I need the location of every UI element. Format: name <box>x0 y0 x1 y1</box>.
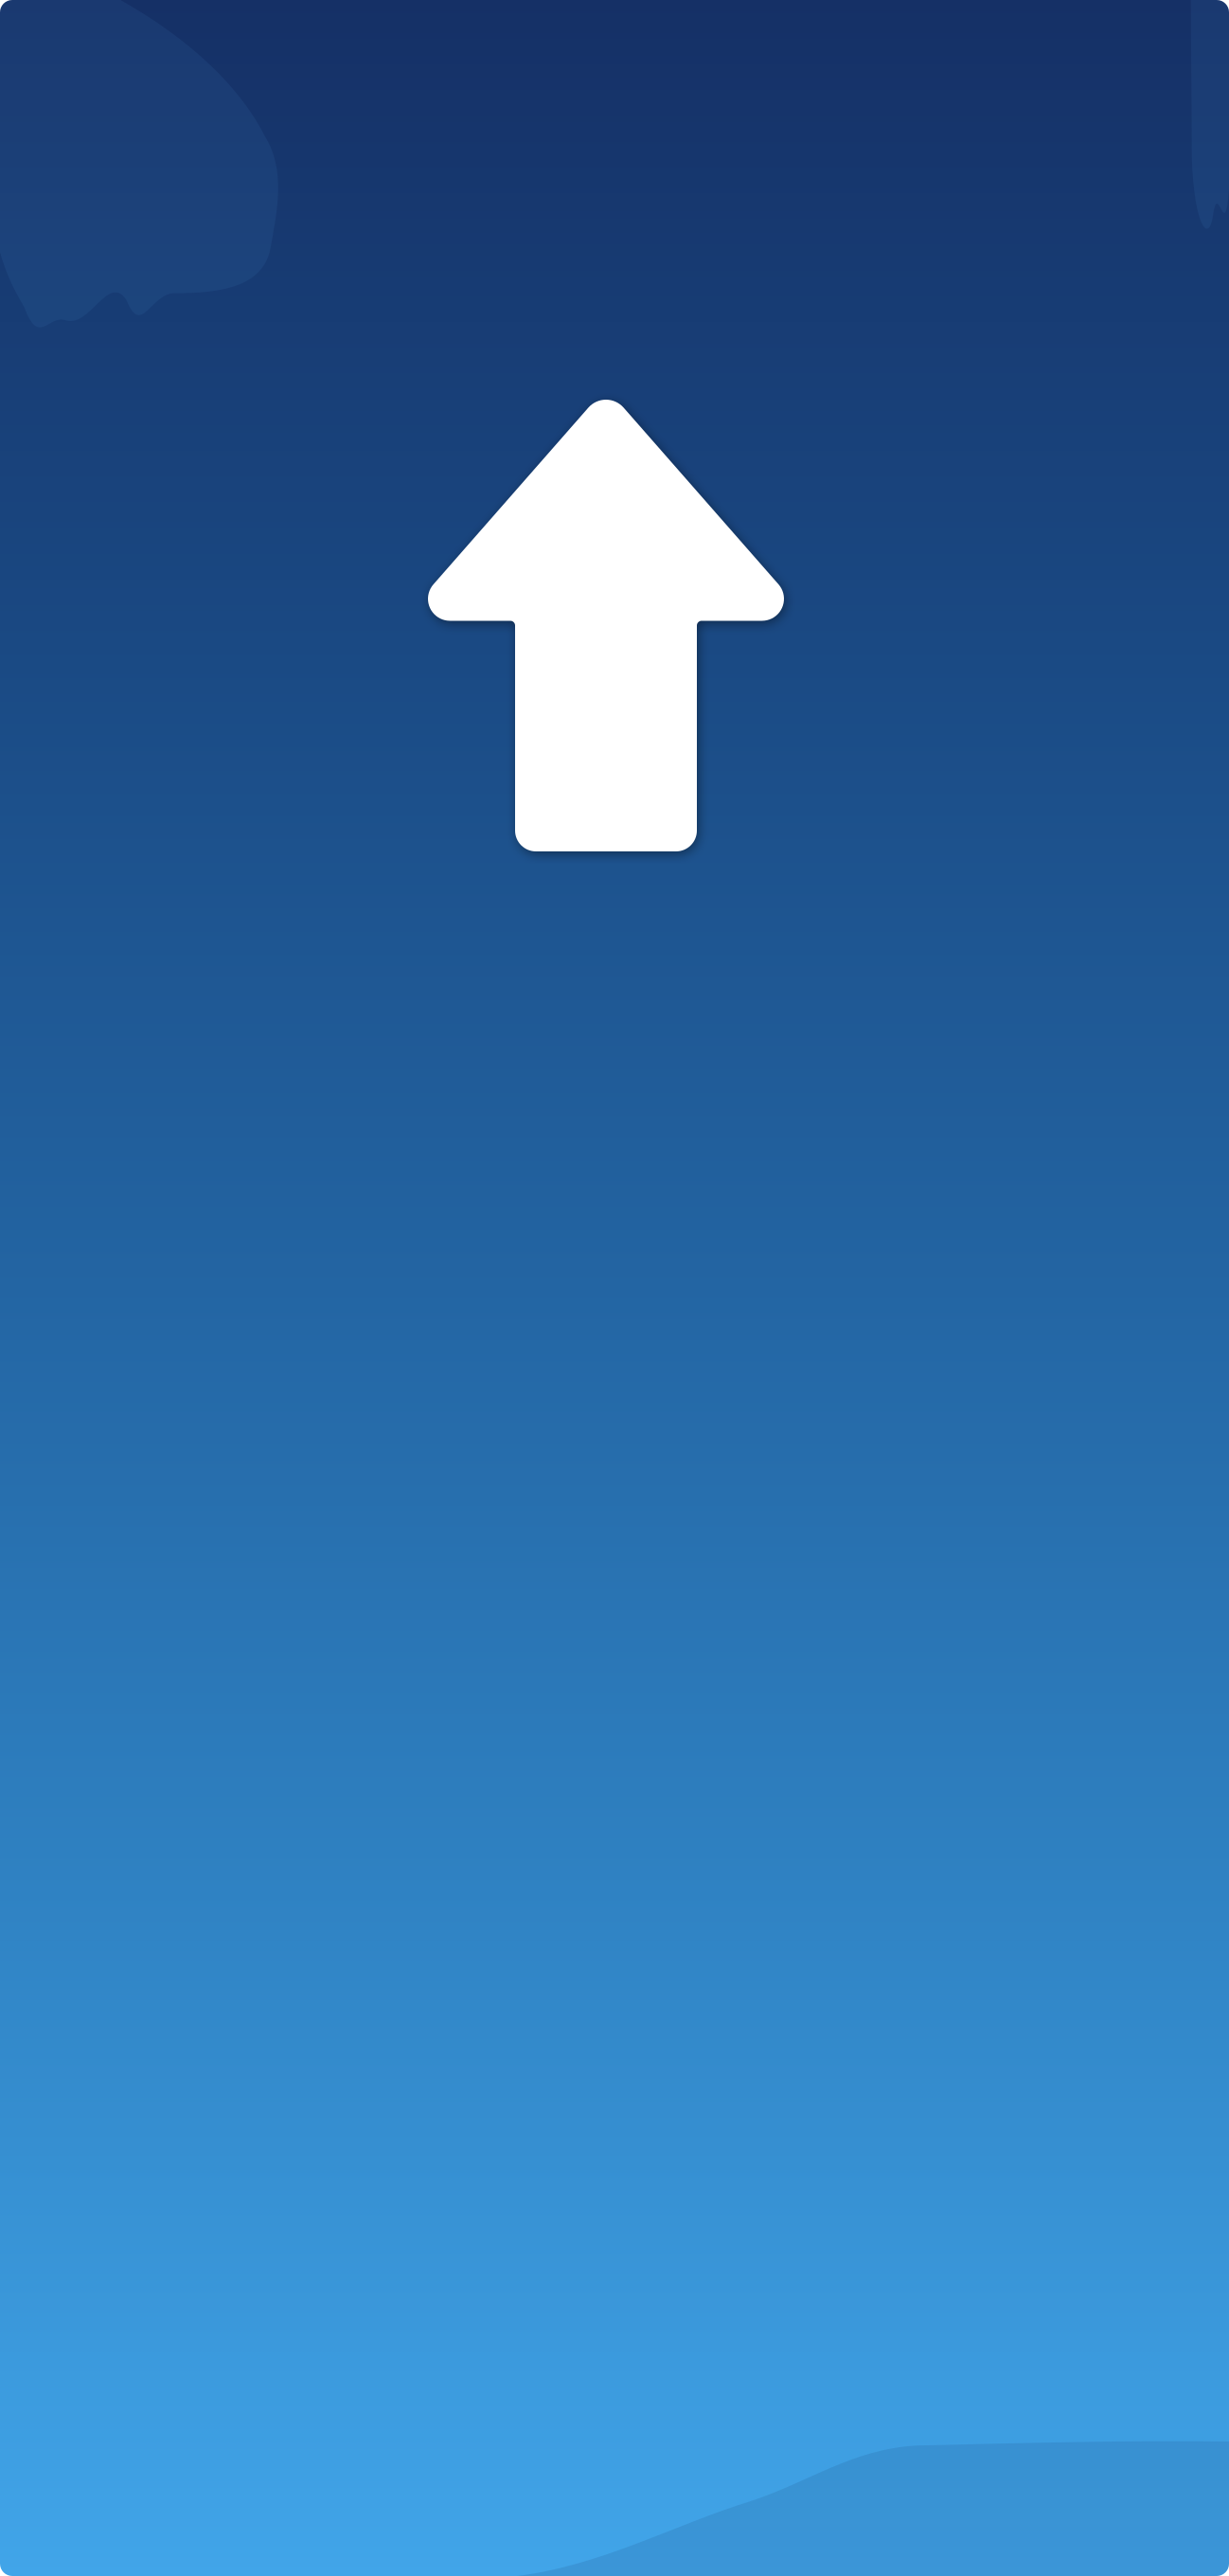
button[interactable]: Upload <box>428 400 784 851</box>
